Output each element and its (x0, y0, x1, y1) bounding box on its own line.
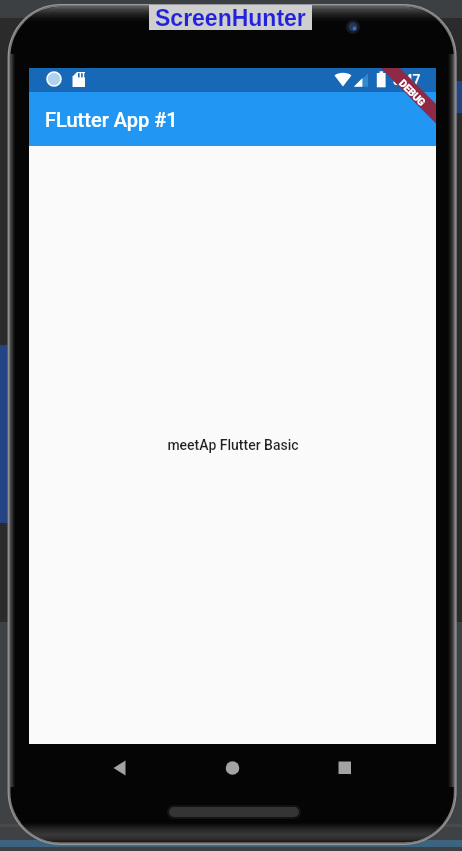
staticText: ScreenHunter (155, 5, 306, 30)
button[interactable]: FLutter App #1 (29, 92, 436, 146)
staticText: 8:47 (393, 72, 421, 88)
button[interactable]: Recent apps (322, 752, 367, 784)
staticText: meetAp Flutter Basic (167, 437, 299, 453)
staticText: FLutter App #1 (45, 108, 178, 131)
button[interactable]: Home (210, 752, 255, 784)
staticText: DEBUG (396, 77, 427, 108)
button[interactable]: Back (95, 752, 140, 784)
